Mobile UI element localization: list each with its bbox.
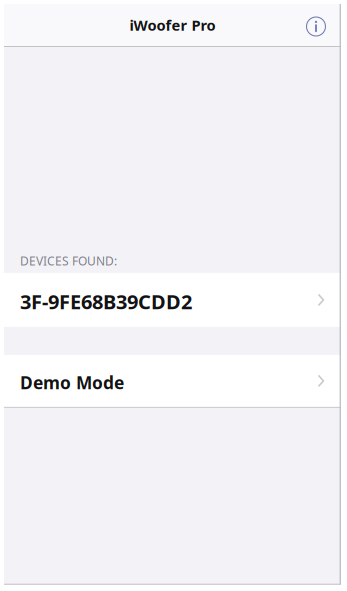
staticText: Demo Mode <box>20 371 124 394</box>
button[interactable]: Info <box>305 14 341 36</box>
staticText: DEVICES FOUND: <box>20 253 117 269</box>
staticText: 3F-9FE68B39CDD2 <box>20 288 192 315</box>
button[interactable]: Demo Mode <box>4 355 341 407</box>
staticText: iWoofer Pro <box>129 15 215 35</box>
button[interactable]: 3F-9FE68B39CDD2 <box>4 273 341 327</box>
